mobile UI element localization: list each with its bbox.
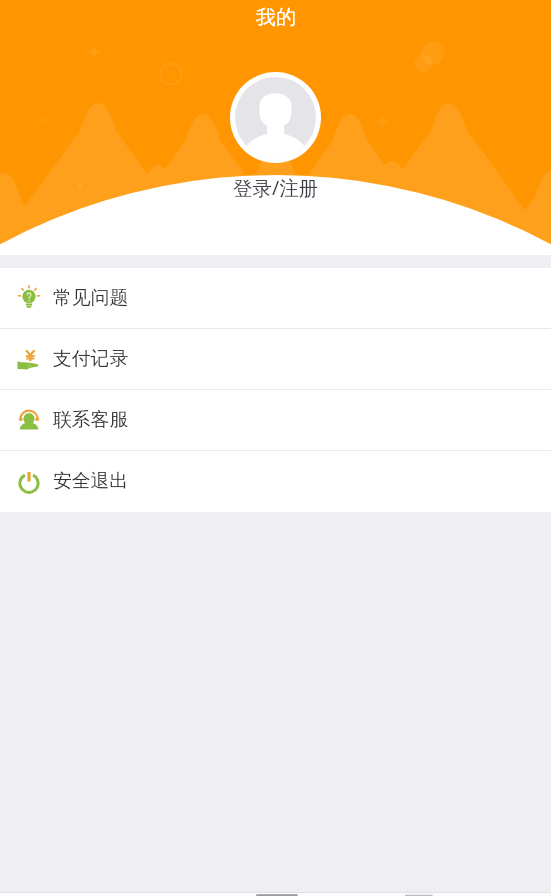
button[interactable]: 常见问题 <box>0 268 551 329</box>
button[interactable]: 联系客服 <box>0 390 551 451</box>
button[interactable]: 安全退出 <box>0 451 551 512</box>
button[interactable]: 支付记录 <box>0 329 551 390</box>
button[interactable]: Profile avatar <box>235 77 316 158</box>
staticText: 支付记录 <box>53 347 129 371</box>
staticText: 联系客服 <box>53 408 129 432</box>
staticText: 我的 <box>256 5 296 30</box>
staticText: 常见问题 <box>53 286 129 310</box>
button[interactable] <box>0 892 551 896</box>
staticText: 安全退出 <box>53 469 129 493</box>
button[interactable]: 登录/注册 <box>233 174 319 201</box>
